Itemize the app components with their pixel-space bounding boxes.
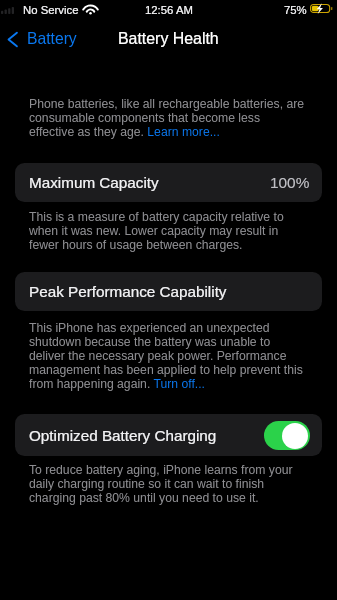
staticText: To reduce battery aging, iPhone learns f… bbox=[29, 463, 306, 505]
button[interactable]: Optimized Battery Charging bbox=[15, 414, 322, 456]
staticText: 12:56 AM bbox=[145, 4, 193, 17]
button[interactable]: Optimized Battery Charging toggle, on bbox=[264, 421, 310, 450]
staticText: This iPhone has experienced an unexpecte… bbox=[29, 321, 306, 391]
staticText: Battery Health bbox=[118, 30, 219, 48]
staticText: Battery bbox=[27, 30, 77, 48]
button[interactable]: Peak Performance Capability bbox=[15, 272, 322, 311]
staticText: Peak Performance Capability bbox=[29, 283, 227, 300]
staticText: Phone batteries, like all rechargeable b… bbox=[29, 97, 306, 139]
staticText: No Service bbox=[23, 4, 79, 17]
staticText: 100% bbox=[270, 174, 310, 191]
staticText: This is a measure of battery capacity re… bbox=[29, 210, 306, 252]
staticText: Optimized Battery Charging bbox=[29, 427, 217, 444]
button[interactable]: Battery bbox=[7, 30, 77, 48]
button[interactable]: Maximum Capacity bbox=[15, 163, 322, 202]
staticText: 75% bbox=[284, 4, 307, 17]
staticText: Maximum Capacity bbox=[29, 174, 159, 191]
